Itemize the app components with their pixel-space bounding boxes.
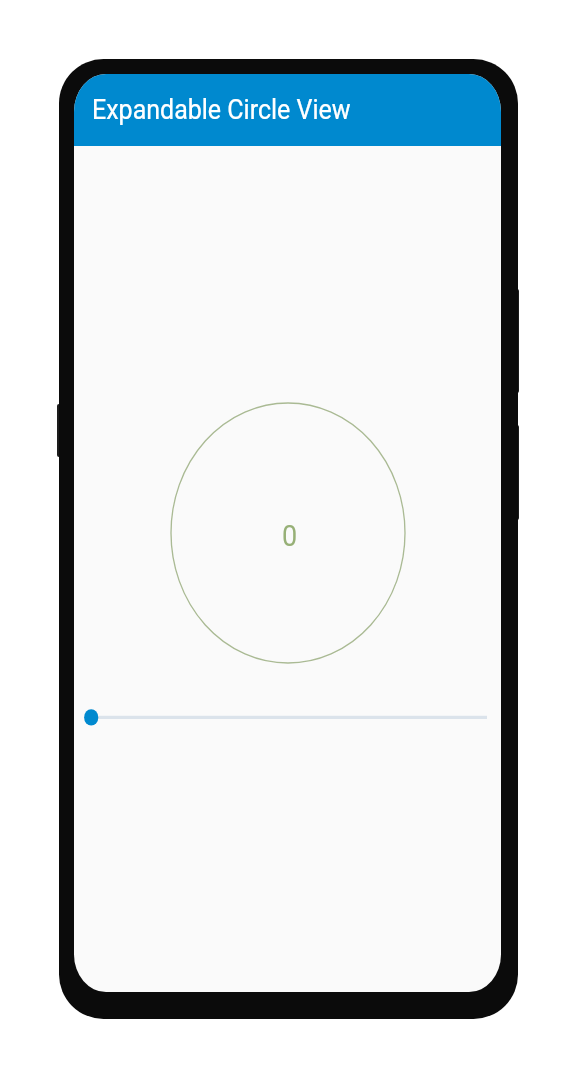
staticText: 0 — [282, 518, 298, 554]
button[interactable]: Expandable circle, value 0 — [171, 403, 405, 663]
button[interactable]: Circle size slider — [74, 697, 501, 737]
staticText: Expandable Circle View — [92, 94, 351, 125]
button[interactable]: Expandable Circle View — [74, 74, 501, 146]
